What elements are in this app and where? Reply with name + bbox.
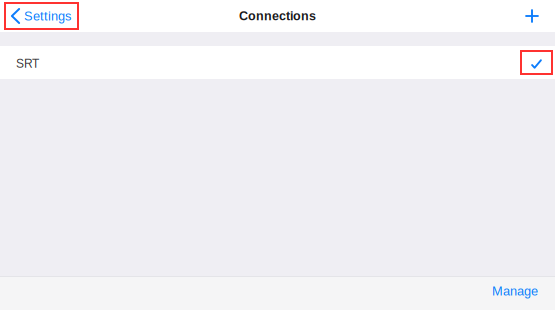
staticText: SRT <box>16 57 39 70</box>
button[interactable]: Manage <box>483 278 547 308</box>
button[interactable]: Add connection <box>517 1 547 31</box>
button[interactable]: SRT <box>0 46 555 79</box>
staticText: Settings <box>24 9 71 23</box>
button[interactable]: Settings <box>4 2 79 30</box>
staticText: Manage <box>492 284 538 298</box>
staticText: Connections <box>239 9 316 23</box>
